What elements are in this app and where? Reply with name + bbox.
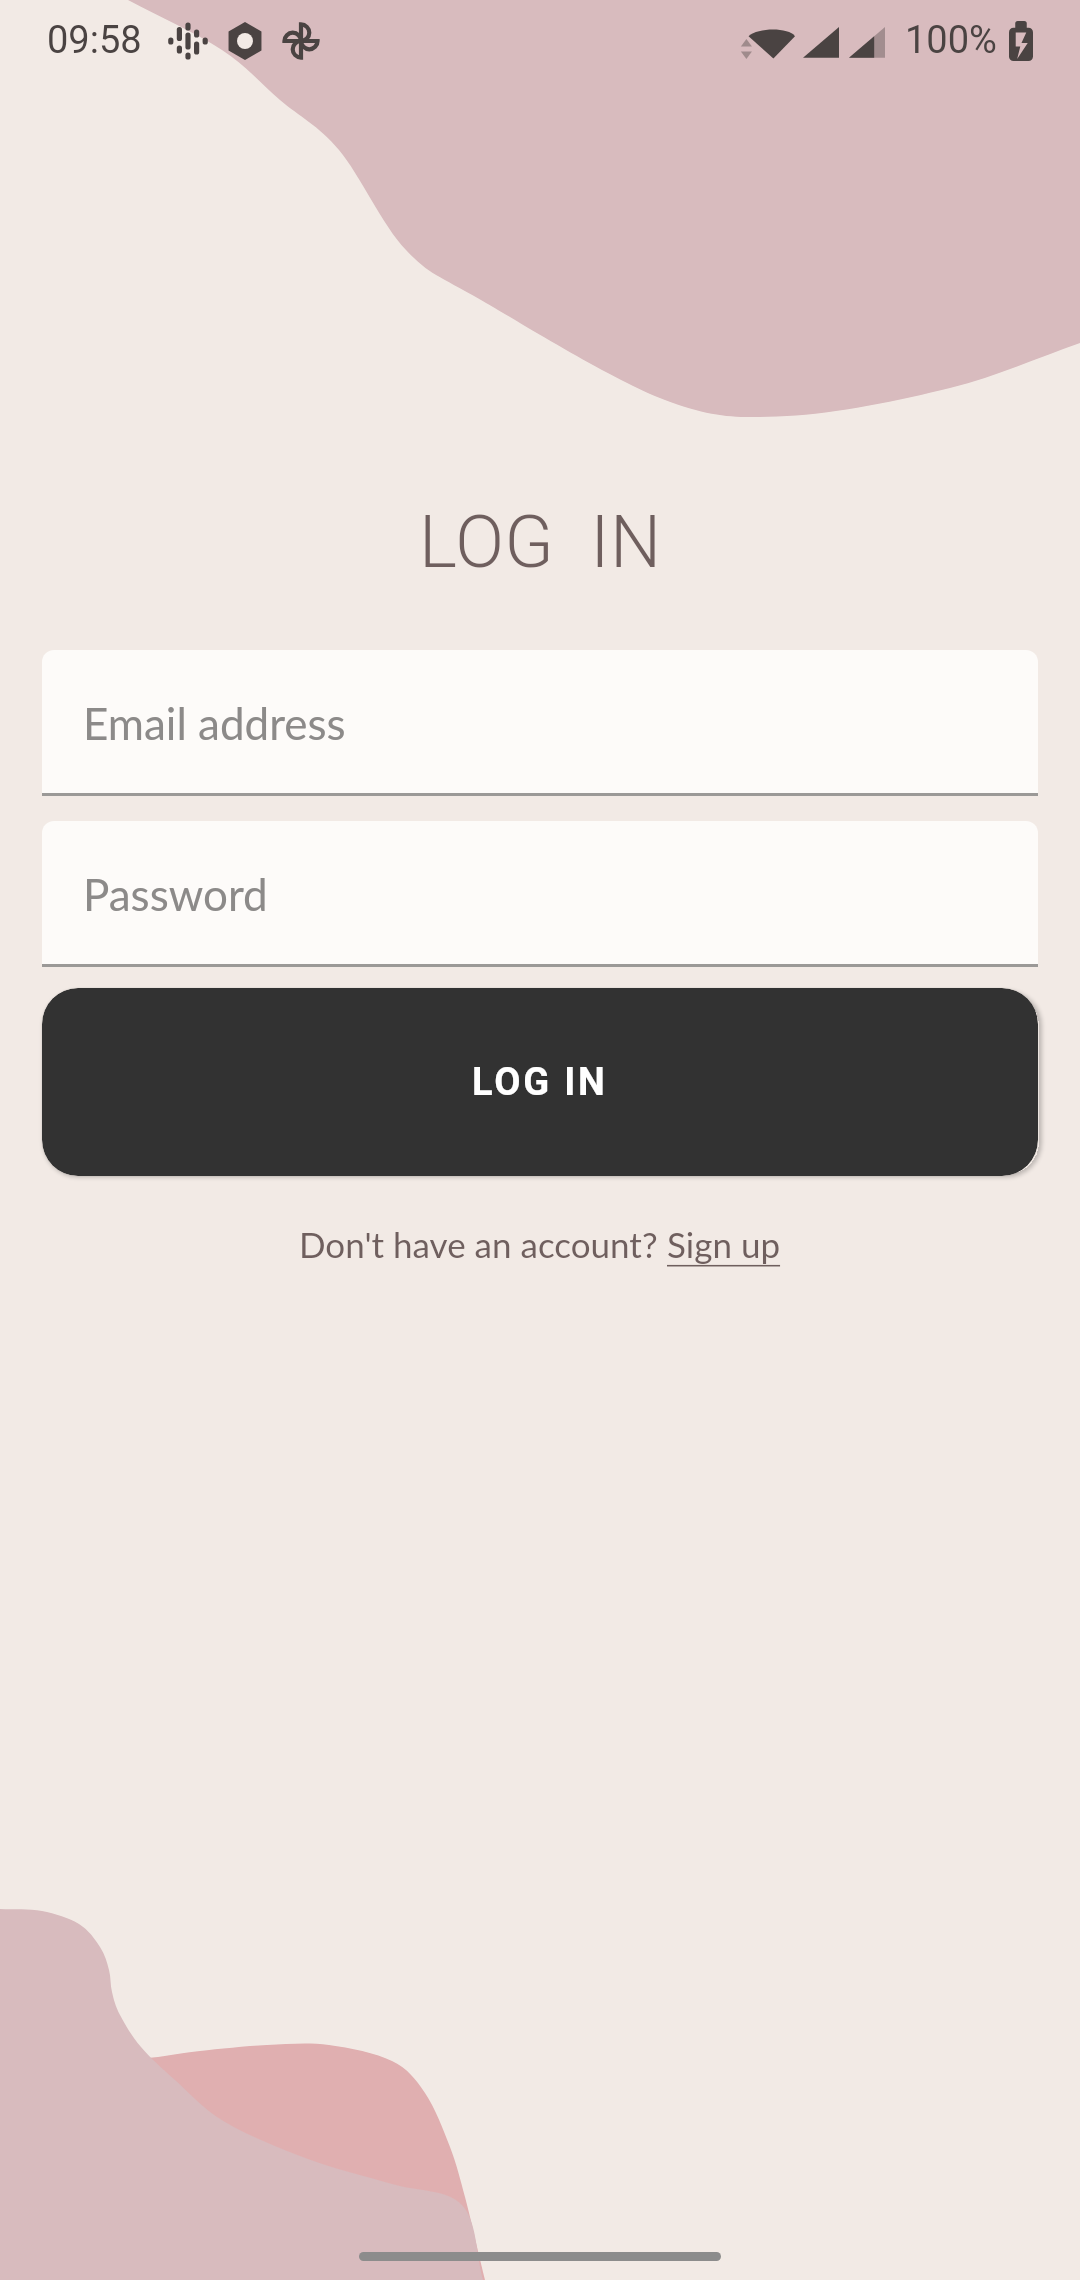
staticText: Don't have an account? bbox=[299, 1223, 667, 1265]
other: Photos bbox=[283, 23, 319, 59]
button[interactable]: Email address bbox=[42, 650, 1038, 796]
other: Wi-Fi bbox=[741, 21, 795, 61]
staticText: 100% bbox=[905, 18, 997, 63]
other: Signal bbox=[803, 21, 839, 61]
other: Assistant bbox=[168, 21, 208, 61]
staticText: Password bbox=[83, 868, 268, 921]
staticText: LOG IN bbox=[419, 500, 662, 584]
other: Battery bbox=[1009, 21, 1033, 61]
other: App icon bbox=[226, 22, 264, 60]
button[interactable]: LOG IN bbox=[42, 988, 1038, 1176]
staticText: Email address bbox=[83, 697, 346, 750]
other: Signal 2 bbox=[849, 21, 885, 61]
staticText: LOG IN bbox=[472, 1060, 608, 1105]
staticText: Sign up bbox=[667, 1223, 781, 1265]
button[interactable]: Don't have an account? bbox=[299, 1223, 781, 1265]
button[interactable]: Password bbox=[42, 821, 1038, 967]
staticText: 09:58 bbox=[47, 18, 142, 63]
